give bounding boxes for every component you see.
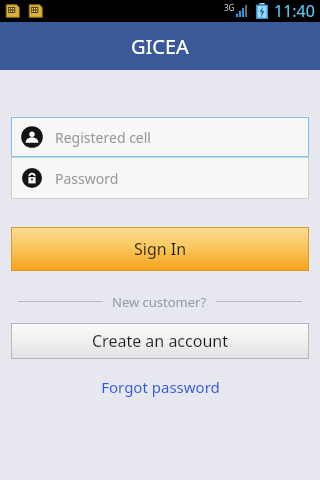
staticText: Registered cell	[55, 128, 151, 147]
button[interactable]: Create an account	[11, 323, 309, 359]
staticText: 3G	[224, 2, 235, 13]
staticText: Forgot password	[101, 377, 220, 397]
button[interactable]: Sign In	[11, 227, 309, 271]
button[interactable]: Forgot password	[89, 373, 232, 401]
staticText: Password	[55, 169, 119, 188]
staticText: Create an account	[92, 330, 228, 352]
button[interactable]: Registered cell	[11, 117, 309, 157]
staticText: Sign In	[134, 238, 187, 260]
button[interactable]: Password	[11, 157, 309, 199]
staticText: 11:40	[274, 0, 315, 22]
staticText: GICEA	[131, 33, 189, 60]
staticText: New customer?	[112, 293, 207, 309]
